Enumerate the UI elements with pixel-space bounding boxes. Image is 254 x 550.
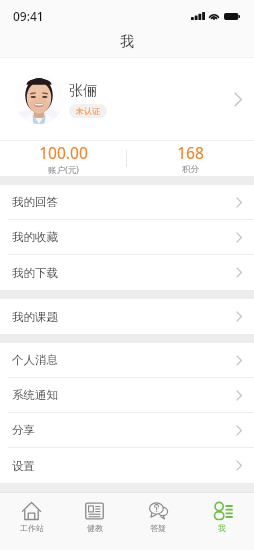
staticText: 个人消息 (12, 353, 58, 367)
staticText: 我的下载 (12, 266, 58, 280)
staticText: 账户(元) (48, 164, 79, 176)
staticText: 168 (177, 142, 204, 163)
staticText: 系统通知 (12, 388, 58, 402)
button[interactable]: 工作站 (0, 492, 63, 550)
button[interactable]: 100.00 (0, 141, 126, 176)
staticText: 张俪 (69, 82, 97, 100)
button[interactable]: 168 (127, 141, 254, 176)
staticText: 100.00 (39, 142, 88, 163)
staticText: 09:41 (13, 8, 44, 24)
staticText: 分享 (12, 423, 35, 437)
staticText: 答疑 (150, 523, 166, 533)
button[interactable]: 设置 (0, 448, 254, 483)
staticText: 我 (120, 33, 134, 51)
button[interactable]: 我的收藏 (0, 220, 254, 254)
staticText: 我的回答 (12, 195, 58, 209)
staticText: 健教 (87, 523, 103, 533)
button[interactable]: 我的回答 (0, 185, 254, 219)
staticText: 设置 (12, 459, 35, 473)
staticText: 我 (218, 523, 226, 533)
button[interactable]: 分享 (0, 413, 254, 447)
button[interactable]: 答疑 (126, 492, 190, 550)
button[interactable]: 张俪 (0, 58, 254, 140)
staticText: 工作站 (20, 523, 44, 533)
button[interactable]: 我的下载 (0, 255, 254, 290)
button[interactable]: 健教 (63, 492, 126, 550)
staticText: 积分 (182, 164, 199, 175)
button[interactable]: 个人消息 (0, 343, 254, 377)
staticText: 我的课题 (12, 310, 58, 324)
button[interactable]: 我 (190, 492, 254, 550)
staticText: 我的收藏 (12, 230, 58, 244)
button[interactable]: 我的课题 (0, 299, 254, 334)
button[interactable]: 系统通知 (0, 378, 254, 412)
staticText: 未认证 (76, 106, 100, 116)
